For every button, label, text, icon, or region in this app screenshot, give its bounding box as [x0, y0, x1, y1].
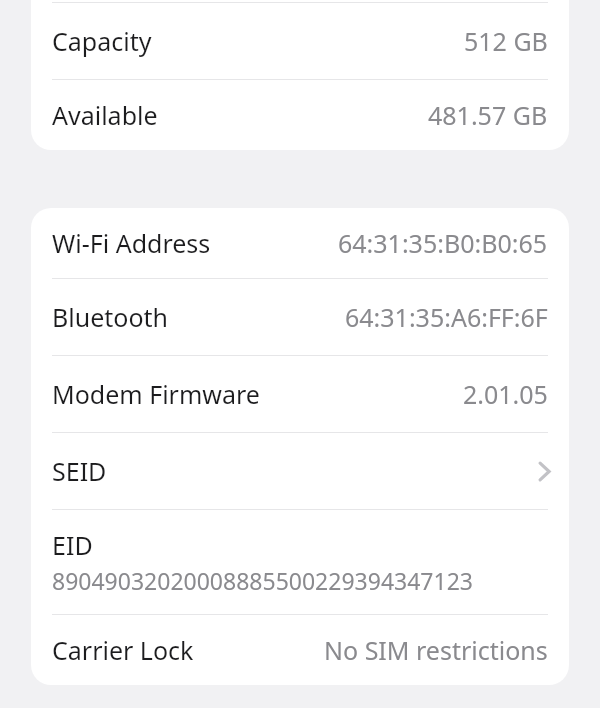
staticText: EID [52, 528, 93, 562]
button[interactable]: Wi-Fi Address [31, 208, 569, 278]
staticText: 89049032020008885500229394347123 [52, 565, 473, 596]
staticText: 2.01.05 [463, 377, 548, 411]
button[interactable]: SEID [31, 433, 569, 509]
staticText: Available [52, 98, 158, 132]
button[interactable]: Bluetooth [31, 279, 569, 355]
staticText: No SIM restrictions [324, 633, 548, 667]
button[interactable]: Carrier Lock [31, 615, 569, 685]
staticText: Modem Firmware [52, 377, 260, 411]
button[interactable]: Modem Firmware [31, 356, 569, 432]
staticText: 481.57 GB [428, 98, 548, 132]
staticText: Carrier Lock [52, 633, 194, 667]
staticText: 512 GB [464, 24, 548, 58]
button[interactable]: Available [31, 80, 569, 150]
staticText: 64:31:35:B0:B0:65 [338, 226, 548, 260]
staticText: Wi-Fi Address [52, 226, 211, 260]
staticText: Bluetooth [52, 300, 169, 334]
staticText: SEID [52, 454, 107, 488]
button[interactable]: Capacity [31, 3, 569, 79]
button[interactable]: EID [31, 510, 569, 614]
staticText: 64:31:35:A6:FF:6F [345, 300, 548, 334]
staticText: Capacity [52, 24, 152, 58]
